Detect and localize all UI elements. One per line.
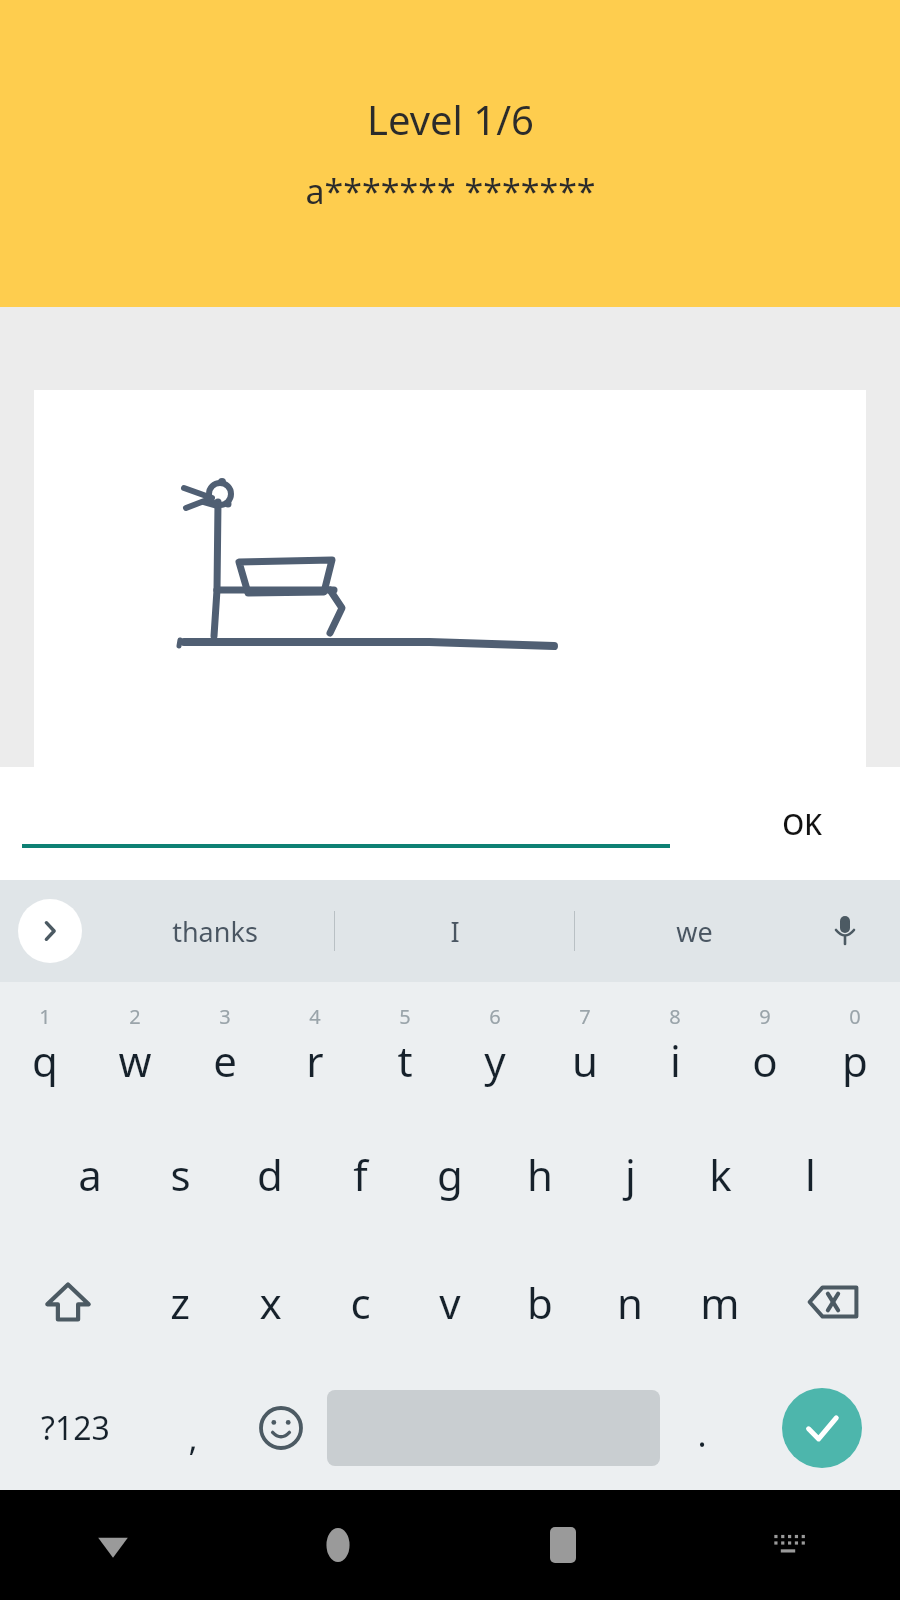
staticText: s bbox=[170, 1146, 191, 1203]
staticText: w bbox=[118, 1032, 152, 1089]
staticText: 3 bbox=[219, 1003, 231, 1030]
button[interactable]: Enter bbox=[743, 1366, 900, 1490]
staticText: y bbox=[484, 1032, 506, 1089]
button[interactable]: . bbox=[660, 1366, 743, 1490]
staticText: k bbox=[709, 1146, 732, 1203]
button[interactable]: Recent apps bbox=[450, 1490, 675, 1600]
button[interactable]: 0 bbox=[810, 982, 900, 1110]
staticText: n bbox=[617, 1274, 643, 1331]
staticText: 2 bbox=[129, 1003, 141, 1030]
staticText: x bbox=[259, 1274, 282, 1331]
button[interactable] bbox=[22, 779, 670, 849]
button[interactable]: b bbox=[495, 1238, 585, 1366]
button[interactable]: 8 bbox=[630, 982, 720, 1110]
button[interactable]: we bbox=[575, 880, 814, 982]
staticText: f bbox=[353, 1146, 368, 1203]
staticText: , bbox=[188, 1415, 198, 1461]
button[interactable]: , bbox=[151, 1366, 234, 1490]
staticText: 4 bbox=[309, 1003, 321, 1030]
staticText: z bbox=[170, 1274, 190, 1331]
button[interactable]: Voice input bbox=[814, 900, 876, 962]
button[interactable]: Emoji bbox=[234, 1366, 327, 1490]
staticText: v bbox=[439, 1274, 461, 1331]
staticText: 5 bbox=[399, 1003, 411, 1030]
staticText: 1 bbox=[39, 1003, 51, 1030]
button[interactable]: ?123 bbox=[0, 1366, 151, 1490]
button[interactable]: Switch keyboard bbox=[675, 1490, 900, 1600]
staticText: i bbox=[670, 1032, 681, 1089]
button[interactable]: 5 bbox=[360, 982, 450, 1110]
button[interactable]: Hide keyboard bbox=[0, 1490, 225, 1600]
staticText: d bbox=[257, 1146, 283, 1203]
staticText: OK bbox=[782, 805, 822, 843]
staticText: g bbox=[437, 1146, 463, 1203]
button[interactable] bbox=[34, 390, 866, 767]
button[interactable]: thanks bbox=[96, 880, 334, 982]
staticText: h bbox=[527, 1146, 553, 1203]
button[interactable]: a bbox=[45, 1110, 135, 1238]
button[interactable]: l bbox=[765, 1110, 855, 1238]
button[interactable]: Expand suggestions bbox=[18, 899, 82, 963]
staticText: I bbox=[450, 913, 460, 950]
button[interactable]: 2 bbox=[90, 982, 180, 1110]
button[interactable]: 9 bbox=[720, 982, 810, 1110]
button[interactable]: Backspace bbox=[765, 1238, 900, 1366]
staticText: t bbox=[397, 1032, 413, 1089]
button[interactable]: 6 bbox=[450, 982, 540, 1110]
staticText: e bbox=[213, 1032, 237, 1089]
staticText: . bbox=[697, 1411, 707, 1457]
button[interactable]: v bbox=[405, 1238, 495, 1366]
staticText: q bbox=[32, 1032, 58, 1089]
button[interactable]: n bbox=[585, 1238, 675, 1366]
button[interactable]: g bbox=[405, 1110, 495, 1238]
button[interactable]: 7 bbox=[540, 982, 630, 1110]
button[interactable]: j bbox=[585, 1110, 675, 1238]
button[interactable]: h bbox=[495, 1110, 585, 1238]
staticText: o bbox=[752, 1032, 778, 1089]
button[interactable]: 4 bbox=[270, 982, 360, 1110]
staticText: p bbox=[842, 1032, 868, 1089]
button[interactable]: d bbox=[225, 1110, 315, 1238]
button[interactable]: c bbox=[315, 1238, 405, 1366]
button[interactable]: s bbox=[135, 1110, 225, 1238]
button[interactable]: k bbox=[675, 1110, 765, 1238]
staticText: u bbox=[572, 1032, 598, 1089]
staticText: Level 1/6 bbox=[367, 92, 534, 146]
staticText: 8 bbox=[669, 1003, 681, 1030]
staticText: 7 bbox=[579, 1003, 591, 1030]
button[interactable]: f bbox=[315, 1110, 405, 1238]
staticText: a******* ******* bbox=[305, 168, 596, 214]
button[interactable]: x bbox=[225, 1238, 315, 1366]
staticText: c bbox=[350, 1274, 371, 1331]
button[interactable]: Home bbox=[225, 1490, 450, 1600]
staticText: 0 bbox=[849, 1003, 861, 1030]
staticText: b bbox=[527, 1274, 553, 1331]
staticText: j bbox=[625, 1146, 636, 1203]
button[interactable]: z bbox=[135, 1238, 225, 1366]
button[interactable]: I bbox=[335, 880, 574, 982]
staticText: 9 bbox=[759, 1003, 771, 1030]
staticText: thanks bbox=[172, 913, 258, 950]
button[interactable]: OK bbox=[760, 789, 844, 859]
button[interactable]: m bbox=[675, 1238, 765, 1366]
staticText: a bbox=[78, 1146, 102, 1203]
staticText: r bbox=[306, 1032, 324, 1089]
button[interactable]: 1 bbox=[0, 982, 90, 1110]
staticText: 6 bbox=[489, 1003, 501, 1030]
staticText: m bbox=[700, 1274, 740, 1331]
staticText: we bbox=[676, 913, 713, 950]
staticText: ?123 bbox=[41, 1406, 110, 1450]
staticText: l bbox=[805, 1146, 816, 1203]
button[interactable]: 3 bbox=[180, 982, 270, 1110]
button[interactable]: Shift bbox=[0, 1238, 135, 1366]
